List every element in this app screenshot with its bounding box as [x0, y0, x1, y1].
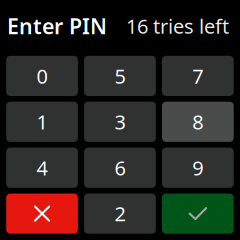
- staticText: 4: [37, 154, 48, 181]
- staticText: 3: [114, 108, 125, 135]
- button[interactable]: 4: [6, 148, 78, 188]
- button[interactable]: 0: [6, 56, 78, 96]
- staticText: 16 tries left: [126, 13, 229, 39]
- staticText: 5: [114, 63, 125, 89]
- button[interactable]: 7: [162, 56, 234, 96]
- button[interactable]: 6: [84, 148, 156, 188]
- button[interactable]: 5: [84, 56, 156, 96]
- staticText: 9: [192, 154, 203, 181]
- button[interactable]: Confirm: [162, 193, 234, 234]
- staticText: 6: [114, 154, 125, 181]
- staticText: 8: [192, 108, 203, 135]
- staticText: 7: [192, 63, 203, 89]
- button[interactable]: 9: [162, 148, 234, 188]
- staticText: Enter PIN: [7, 12, 107, 40]
- button[interactable]: 8: [162, 102, 234, 142]
- staticText: 0: [37, 63, 48, 89]
- staticText: 1: [37, 108, 48, 135]
- button[interactable]: 3: [84, 102, 156, 142]
- button[interactable]: 2: [84, 193, 156, 234]
- staticText: 2: [114, 200, 125, 227]
- button[interactable]: 1: [6, 102, 78, 142]
- button[interactable]: Cancel: [6, 193, 78, 234]
